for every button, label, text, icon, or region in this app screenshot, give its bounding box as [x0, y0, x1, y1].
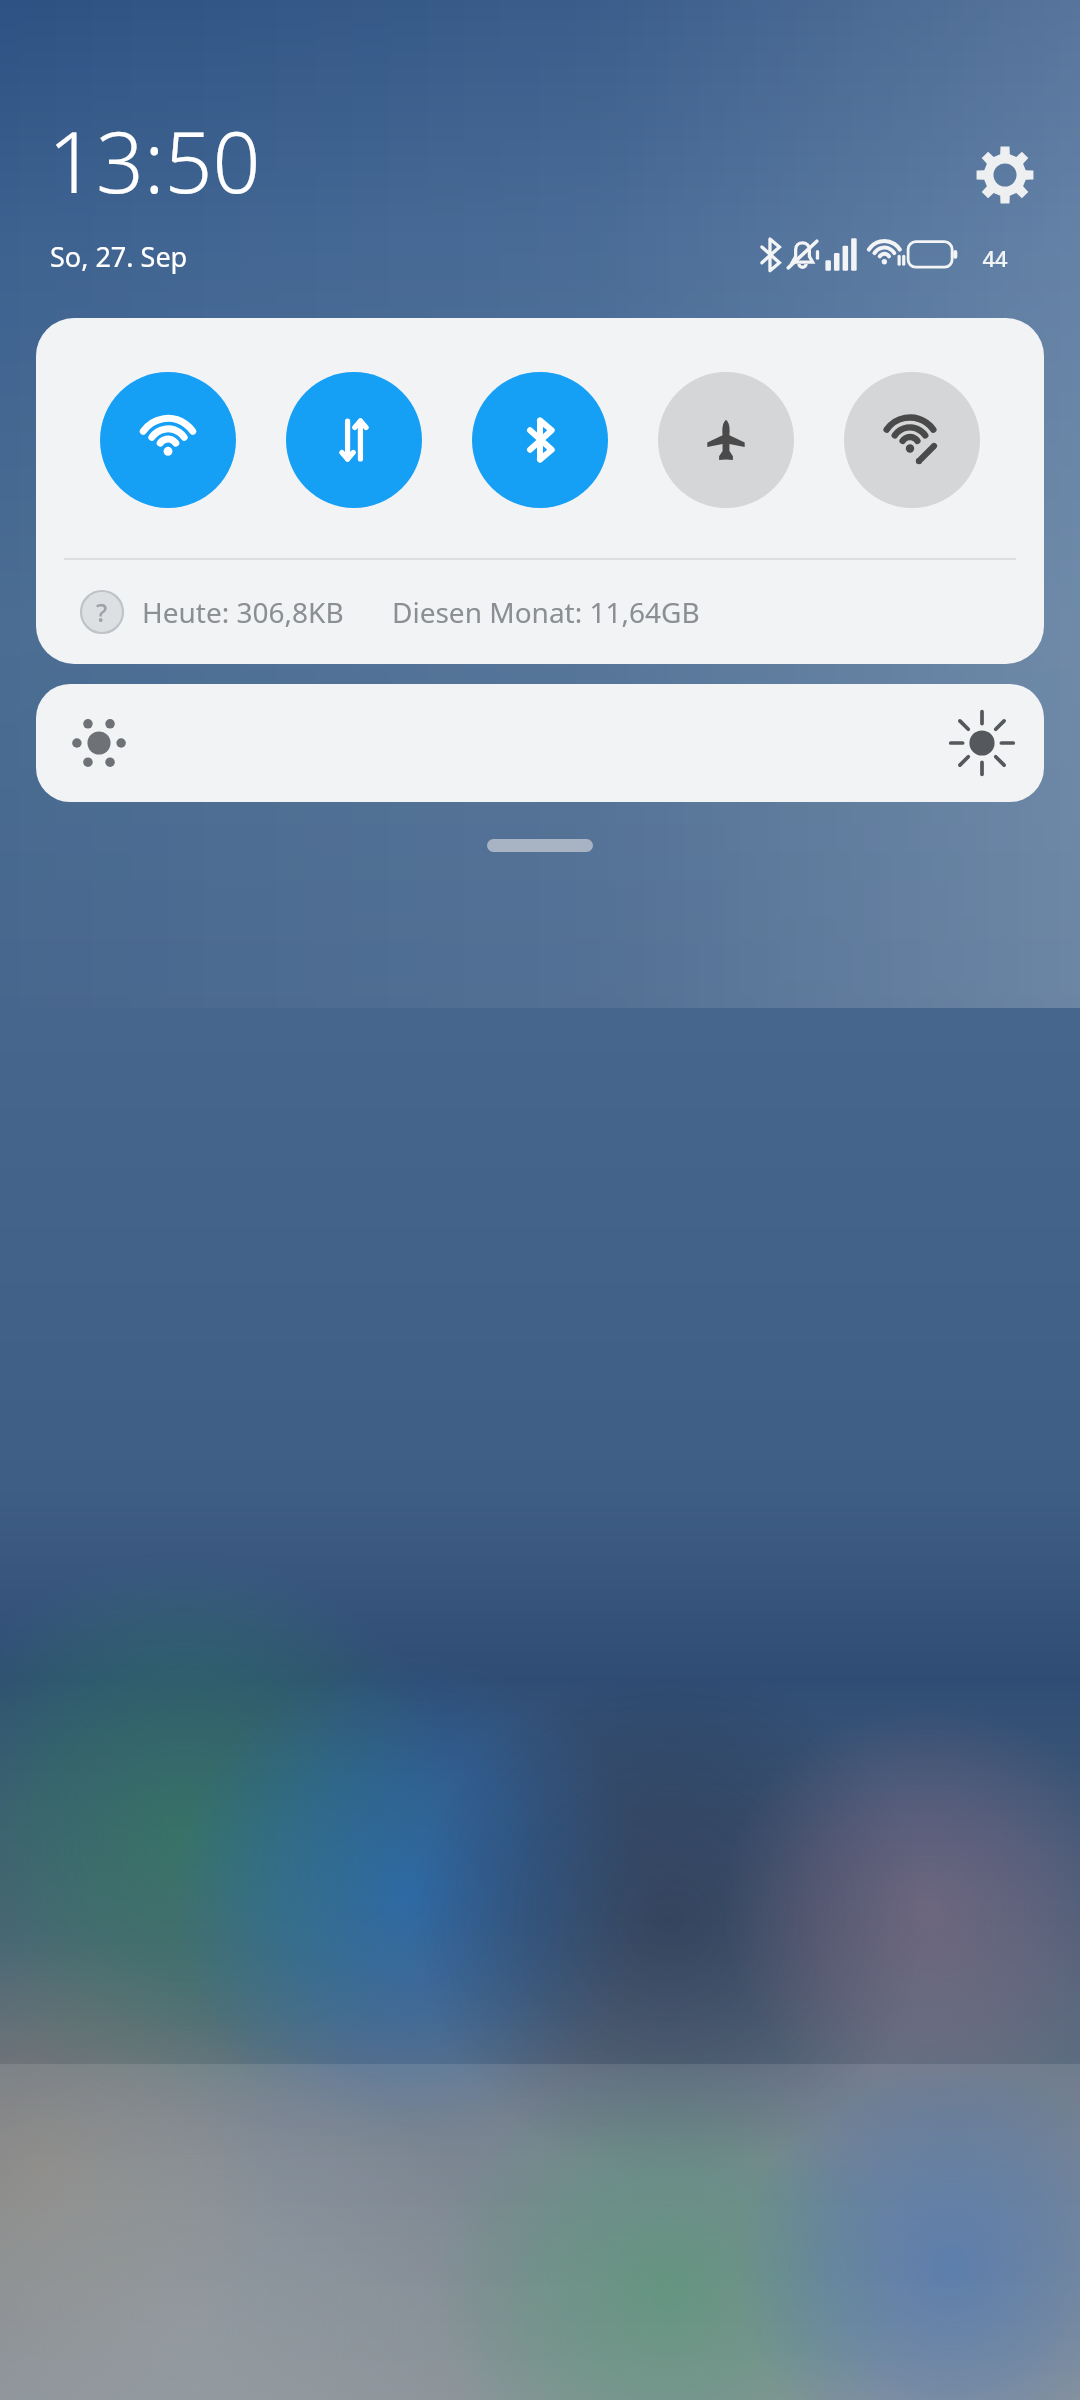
button[interactable]: Settings	[951, 121, 1059, 229]
staticText: 44	[972, 243, 1018, 273]
button[interactable]: Mobile data	[286, 372, 422, 508]
button[interactable]: Wi-Fi	[100, 372, 236, 508]
staticText: ?	[96, 595, 108, 629]
button[interactable]: Airplane mode	[658, 372, 794, 508]
staticText: 13:50	[48, 103, 261, 217]
staticText: So, 27. Sep	[50, 238, 188, 275]
button[interactable]: ?	[36, 560, 1044, 664]
button[interactable]: Expand quick settings	[0, 830, 1080, 860]
staticText: Diesen Monat: 11,64GB	[392, 593, 700, 631]
button[interactable]: Bluetooth	[472, 372, 608, 508]
button[interactable]: Brightness	[36, 684, 1044, 802]
button[interactable]: Hotspot	[844, 372, 980, 508]
staticText: Heute: 306,8KB	[142, 593, 344, 631]
